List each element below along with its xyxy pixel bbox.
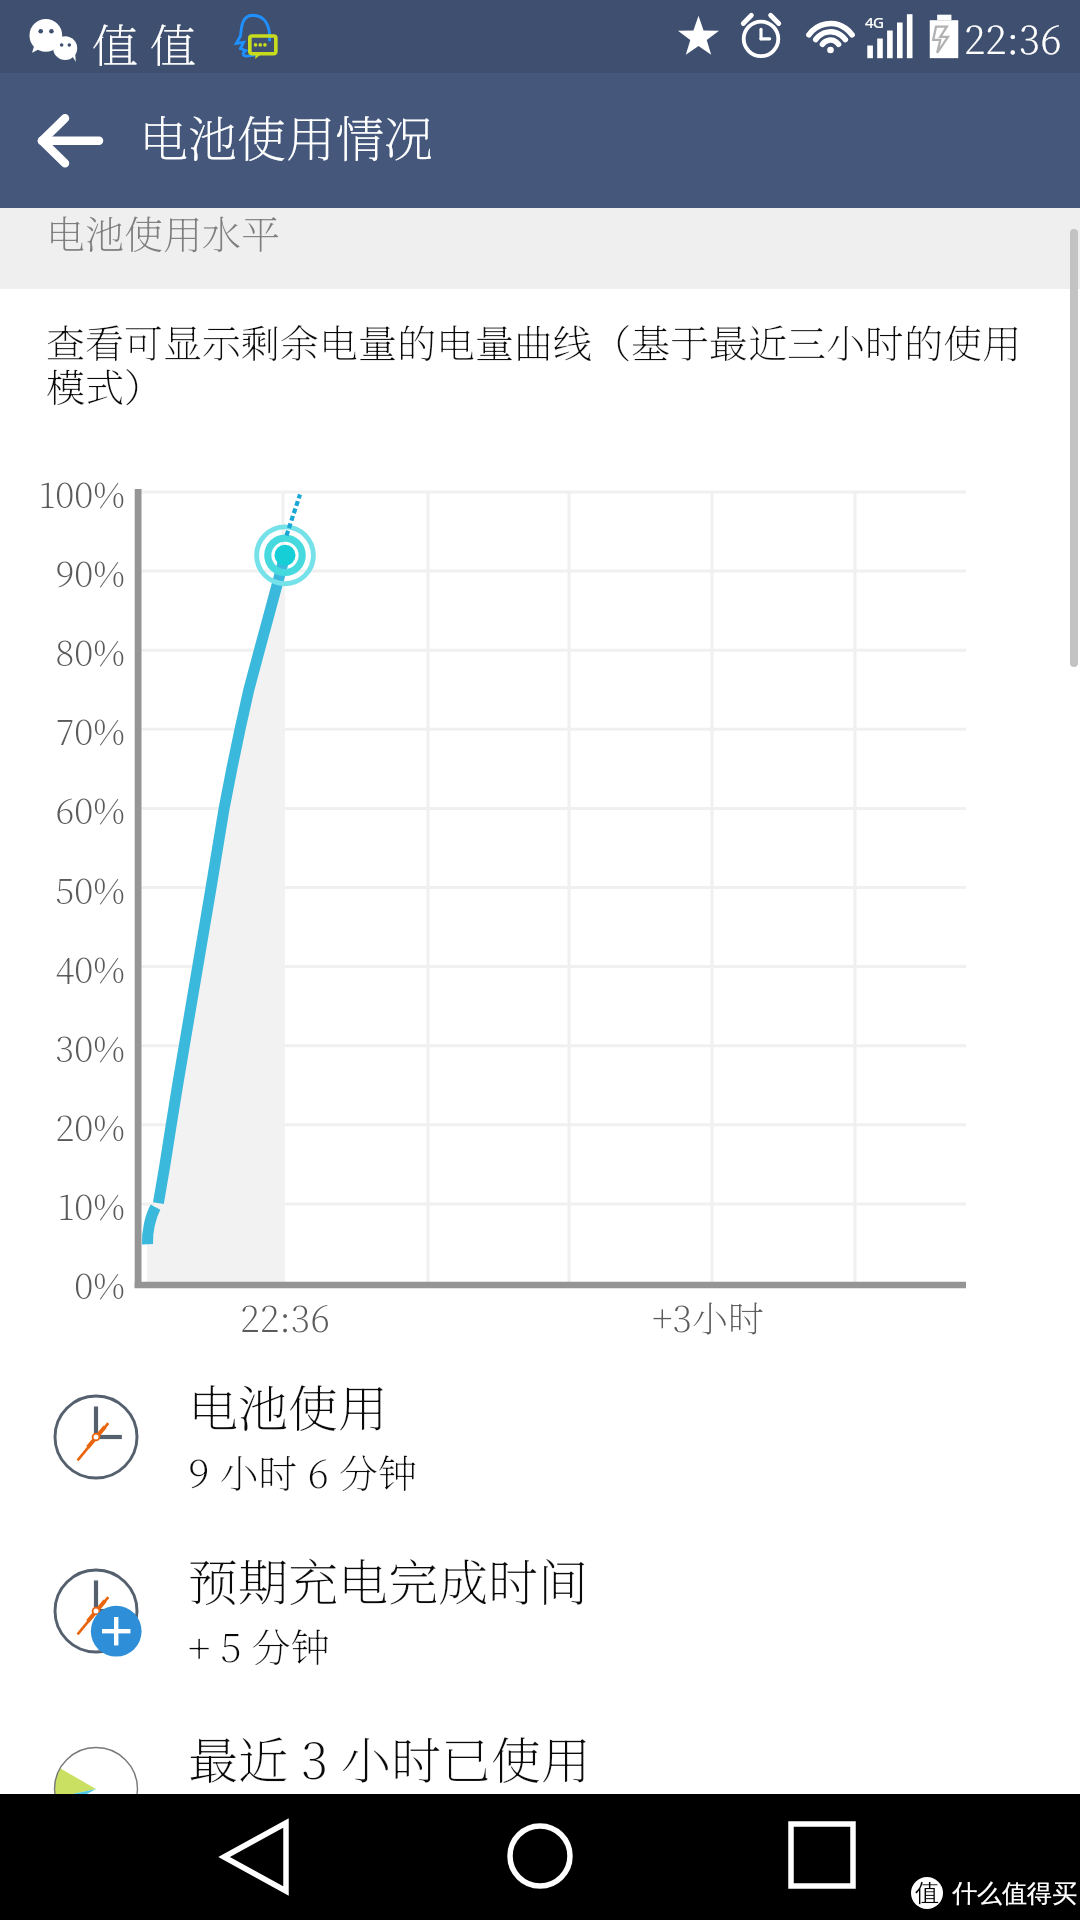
staticText: 30% bbox=[0, 1022, 125, 1072]
button[interactable]: 电池使用 bbox=[0, 1379, 1080, 1551]
staticText: 10% bbox=[0, 1180, 125, 1230]
staticText: 查看可显示剩余电量的电量曲线（基于最近三小时的使用模式） bbox=[46, 313, 1031, 413]
staticText: 40% bbox=[0, 943, 125, 993]
button[interactable]: Back bbox=[16, 90, 116, 190]
staticText: 4G bbox=[865, 12, 884, 32]
staticText: 9 小时 6 分钟 bbox=[188, 1443, 417, 1499]
staticText: 值 bbox=[915, 1878, 939, 1908]
staticText: 20% bbox=[0, 1101, 125, 1151]
staticText: 预期充电完成时间 bbox=[188, 1543, 588, 1615]
staticText: 0% bbox=[0, 1259, 125, 1309]
staticText: 值 值 bbox=[92, 10, 196, 76]
staticText: 电池使用 bbox=[188, 1369, 388, 1441]
staticText: 60% bbox=[0, 784, 125, 834]
button[interactable]: Back bbox=[183, 1799, 327, 1920]
staticText: +3小时 bbox=[618, 1291, 798, 1343]
staticText: 最近 3 小时已使用 bbox=[188, 1721, 591, 1793]
staticText: 50% bbox=[0, 864, 125, 914]
staticText: 22:36 bbox=[964, 9, 1062, 65]
button[interactable]: Recents bbox=[750, 1799, 894, 1920]
staticText: 22:36 bbox=[205, 1291, 365, 1343]
staticText: 100% bbox=[0, 468, 125, 518]
staticText: 70% bbox=[0, 705, 125, 755]
button[interactable]: 预期充电完成时间 bbox=[0, 1553, 1080, 1725]
staticText: 电池使用情况 bbox=[139, 101, 434, 171]
staticText: + 5 分钟 bbox=[188, 1617, 330, 1673]
button[interactable]: 最近 3 小时已使用 bbox=[0, 1731, 1080, 1851]
staticText: 80% bbox=[0, 626, 125, 676]
staticText: 90% bbox=[0, 547, 125, 597]
button[interactable]: Home bbox=[468, 1799, 612, 1920]
staticText: 电池使用水平 bbox=[46, 204, 281, 260]
staticText: 什么值得买 bbox=[952, 1878, 1077, 1909]
